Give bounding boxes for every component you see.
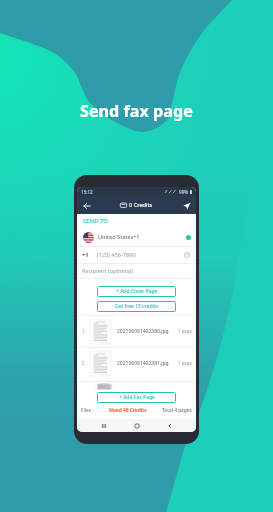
staticText: (123) 456-7890 (97, 251, 136, 259)
staticText: SEND TO (83, 217, 109, 225)
staticText: Send fax page (80, 100, 193, 122)
button[interactable]: Home (130, 419, 143, 432)
staticText: 15:12 (81, 189, 93, 195)
button[interactable]: Recent apps (97, 419, 110, 432)
staticText: +1 (82, 251, 89, 259)
staticText: Need 40 Credits (109, 407, 147, 414)
staticText: United States+1 (98, 233, 140, 241)
staticText: 99% (179, 189, 189, 195)
staticText: Get free 15 credits (115, 303, 158, 310)
button[interactable]: 2 (77, 347, 196, 379)
staticText: Files : (81, 407, 94, 414)
staticText: + Add Cover Page (116, 288, 158, 295)
staticText: 1 page (178, 360, 192, 366)
staticText: 202106091402381.jpg (117, 360, 169, 367)
staticText: 2 (82, 360, 85, 366)
button[interactable]: Send fax (180, 199, 193, 212)
staticText: + Add Fax Page (119, 394, 155, 401)
button[interactable]: Recipient (optional) (77, 263, 196, 278)
staticText: 202106091402380.jpg (117, 328, 169, 335)
staticText: Total 4 pages (162, 407, 192, 414)
staticText: 1 (82, 328, 85, 334)
button[interactable]: Back (80, 199, 93, 212)
staticText: 1 page (178, 328, 192, 334)
button[interactable]: 1 (77, 315, 196, 347)
button[interactable]: United States+1 (77, 228, 196, 246)
staticText: Recipient (optional) (82, 267, 133, 275)
button[interactable]: + Add Fax Page (97, 392, 176, 403)
button[interactable]: Get free 15 credits (97, 301, 176, 312)
staticText: 0 Credits (129, 201, 153, 209)
button[interactable]: Recent numbers (182, 250, 192, 260)
button[interactable]: + Add Cover Page (97, 286, 176, 297)
button[interactable]: Back (163, 419, 176, 432)
button[interactable]: 0 Credits (120, 201, 153, 209)
